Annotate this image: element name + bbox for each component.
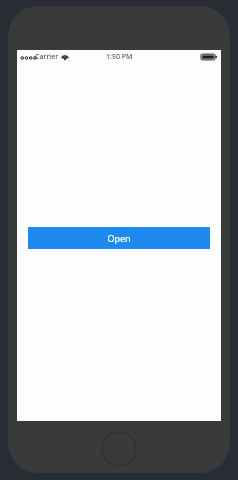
staticText: Open [107, 232, 131, 244]
staticText: Carrier [35, 52, 59, 62]
other: Home [101, 431, 137, 467]
staticText: 1:50 PM [106, 52, 133, 62]
button[interactable]: Open [28, 227, 210, 249]
